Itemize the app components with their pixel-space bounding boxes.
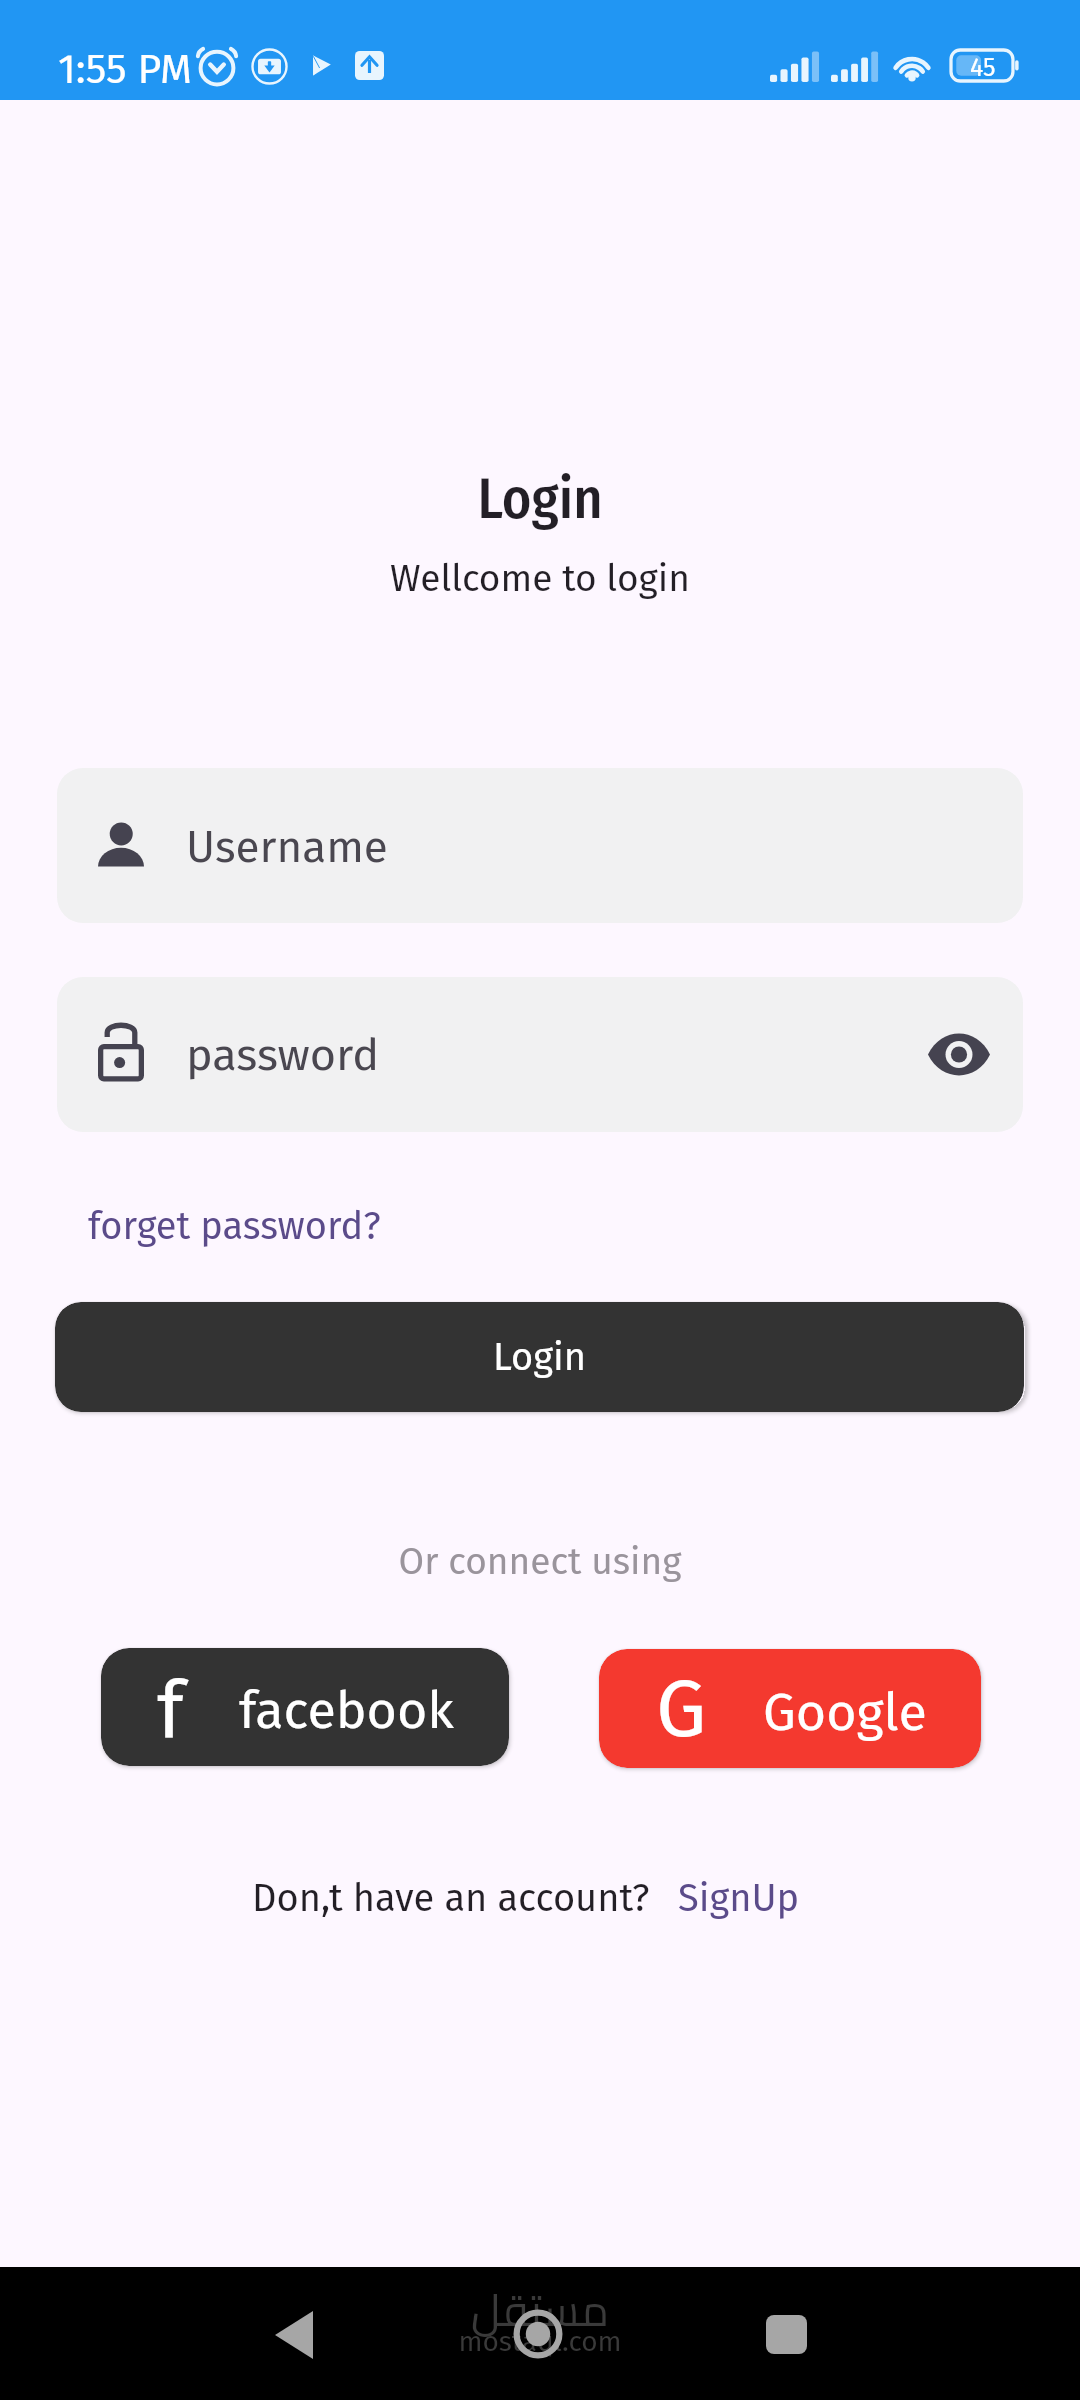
staticText: مستقل: [455, 2269, 625, 2351]
staticText: Username: [186, 821, 388, 874]
button[interactable]: password: [57, 977, 1023, 1132]
button[interactable]: Login: [55, 1302, 1024, 1412]
staticText: SignUp: [678, 1875, 800, 1921]
button[interactable]: forget password?: [88, 1203, 381, 1249]
button[interactable]: Recent apps: [731, 2279, 841, 2389]
staticText: f: [157, 1662, 184, 1758]
staticText: password: [186, 1028, 380, 1082]
staticText: G: [656, 1661, 707, 1757]
staticText: Login: [0, 466, 1080, 533]
staticText: Login: [493, 1334, 586, 1380]
staticText: facebook: [239, 1679, 454, 1741]
button[interactable]: SignUp: [678, 1875, 800, 1921]
staticText: Google: [763, 1681, 927, 1743]
staticText: Or connect using: [0, 1539, 1080, 1583]
staticText: 1:55 PM: [58, 45, 192, 94]
button[interactable]: f: [101, 1648, 509, 1766]
button[interactable]: Home: [483, 2279, 593, 2389]
button[interactable]: Back: [239, 2280, 349, 2390]
staticText: Don,t have an account?: [252, 1875, 650, 1921]
staticText: 45: [970, 53, 996, 83]
button[interactable]: G: [599, 1649, 981, 1768]
button[interactable]: Username: [57, 768, 1023, 923]
button[interactable]: Show password: [909, 1004, 1009, 1104]
staticText: forget password?: [88, 1203, 381, 1249]
staticText: Wellcome to login: [0, 556, 1080, 600]
staticText: mostaql.com: [455, 2325, 625, 2359]
